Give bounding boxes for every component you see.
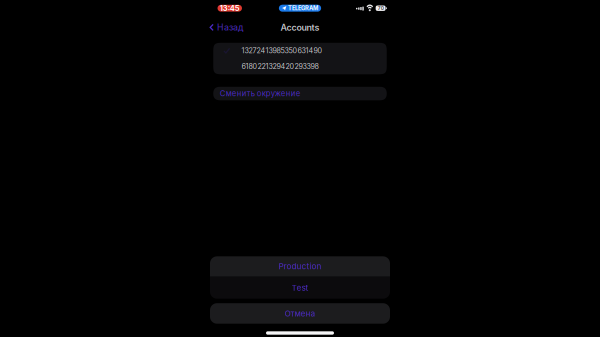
staticText: Назад — [217, 22, 244, 33]
staticText: TELEGRAM — [288, 5, 318, 12]
button[interactable]: Сменить окружение — [213, 87, 387, 100]
staticText: Test — [291, 283, 308, 293]
staticText: 13272413985350631490 — [241, 46, 322, 55]
button[interactable]: Назад — [205, 19, 250, 36]
button[interactable]: 6180221329420293398 — [213, 58, 387, 74]
staticText: Accounts — [280, 22, 319, 33]
button[interactable]: Отмена — [210, 303, 390, 324]
staticText: Сменить окружение — [220, 89, 301, 98]
staticText: Отмена — [284, 308, 315, 318]
button[interactable]: Test — [210, 277, 390, 299]
button[interactable]: 13272413985350631490 — [213, 43, 387, 59]
staticText: Production — [278, 261, 321, 271]
staticText: 6180221329420293398 — [241, 62, 318, 71]
button[interactable]: Production — [210, 256, 390, 276]
staticText: 70 — [378, 5, 384, 11]
staticText: 13:45 — [220, 4, 240, 13]
